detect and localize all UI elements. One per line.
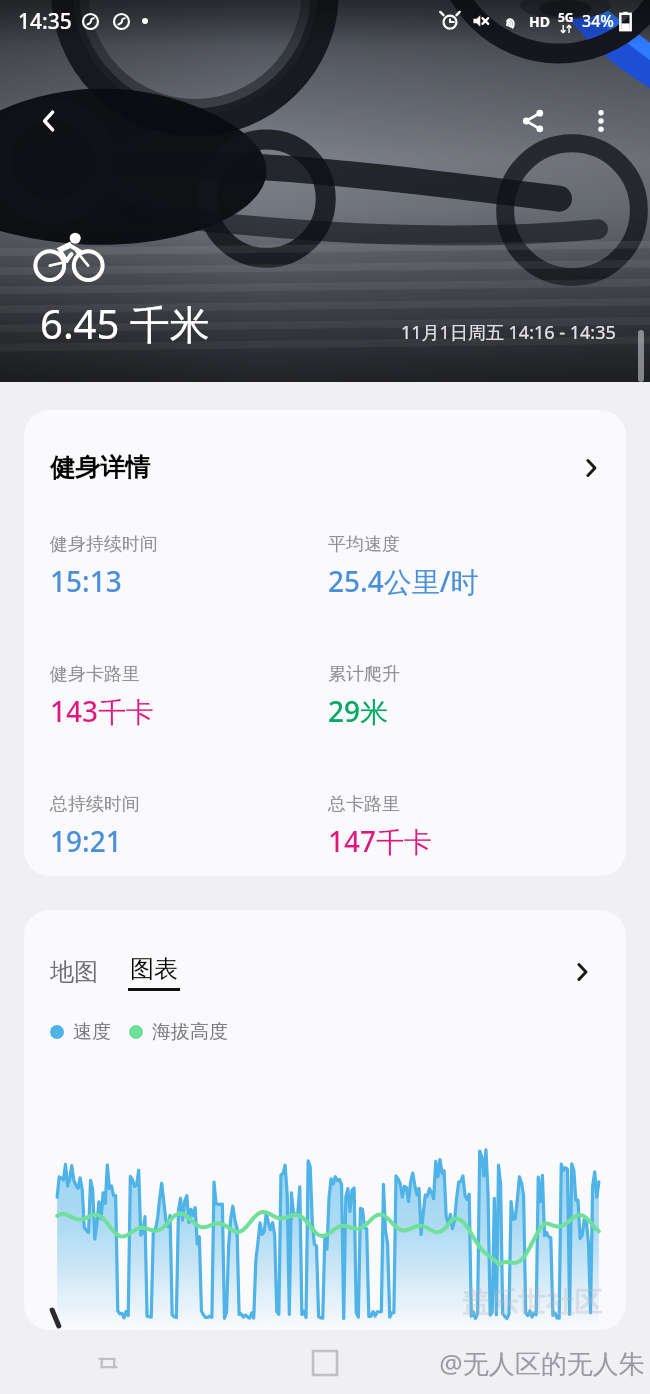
- staticText: 29米: [328, 692, 389, 730]
- staticText: 健身卡路里: [50, 663, 140, 686]
- staticText: 总持续时间: [50, 793, 140, 816]
- staticText: 盖乐世社区: [462, 1285, 602, 1320]
- staticText: 图表: [130, 954, 178, 984]
- button[interactable]: Recents: [0, 1332, 216, 1394]
- button[interactable]: 图表: [128, 954, 180, 991]
- staticText: 11月1日周五 14:16 - 14:35: [401, 320, 616, 345]
- staticText: 6.45 千米: [40, 296, 210, 351]
- staticText: 143千卡: [50, 692, 155, 730]
- button[interactable]: Back: [20, 92, 78, 150]
- button[interactable]: Home: [216, 1332, 433, 1394]
- staticText: 健身详情: [50, 452, 150, 483]
- button[interactable]: Back: [433, 1332, 650, 1394]
- staticText: 健身持续时间: [50, 533, 158, 556]
- staticText: 速度: [73, 1020, 111, 1044]
- button[interactable]: More options: [572, 92, 630, 150]
- staticText: 平均速度: [328, 533, 400, 556]
- button[interactable]: Share: [504, 92, 562, 150]
- staticText: 34%: [582, 10, 614, 32]
- button[interactable]: 地图: [50, 957, 98, 987]
- button[interactable]: Open chart: [562, 952, 602, 992]
- staticText: 地图: [50, 957, 98, 987]
- staticText: 15:13: [50, 562, 122, 600]
- staticText: 25.4公里/时: [328, 562, 479, 600]
- staticText: 海拔高度: [152, 1020, 228, 1044]
- staticText: 147千卡: [328, 822, 433, 860]
- staticText: 14:35: [18, 7, 72, 36]
- staticText: 5G: [558, 9, 574, 25]
- staticText: 累计爬升: [328, 663, 400, 686]
- staticText: @无人区的无人朱: [439, 1345, 645, 1381]
- button[interactable]: 健身详情: [24, 410, 626, 876]
- staticText: 19:21: [50, 822, 122, 860]
- staticText: HD: [529, 12, 550, 31]
- staticText: 总卡路里: [328, 793, 400, 816]
